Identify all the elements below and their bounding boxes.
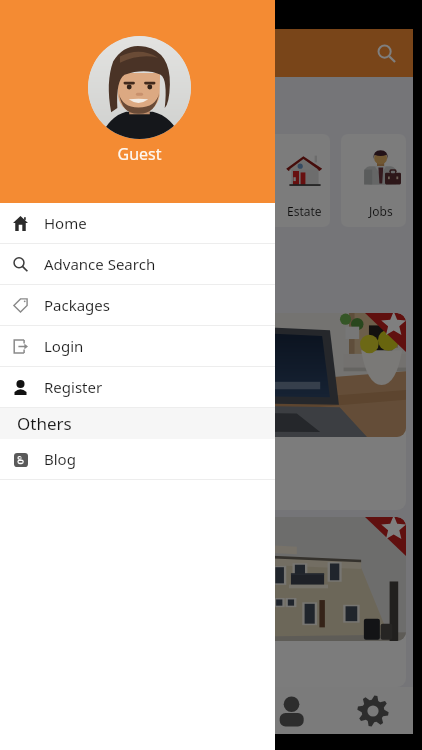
- staticText: Jobs: [369, 203, 393, 219]
- staticText: Guest: [117, 143, 162, 165]
- staticText: Login: [44, 336, 84, 356]
- staticText: Packages: [44, 295, 110, 315]
- button[interactable]: Jobs: [341, 134, 406, 227]
- button[interactable]: Settings: [332, 687, 413, 734]
- button[interactable]: Estate: [265, 134, 330, 227]
- button[interactable]: 4 Bedroom Duplex for Sale: [16, 517, 406, 687]
- button[interactable]: Advance Search: [0, 244, 275, 285]
- staticText: ClassifiedApp: [23, 40, 146, 66]
- staticText: Estate: [287, 203, 322, 219]
- button[interactable]: Packages: [0, 285, 275, 326]
- staticText: Others: [17, 412, 72, 435]
- button[interactable]: Apple Macbook Pro Laptop: [16, 313, 406, 510]
- staticText: Register: [44, 377, 103, 397]
- button[interactable]: Account: [251, 687, 332, 734]
- button[interactable]: Phones: [189, 134, 254, 227]
- button[interactable]: Register: [0, 367, 275, 408]
- staticText: Home: [44, 213, 87, 233]
- staticText: Blog: [44, 449, 76, 469]
- staticText: Featured Ads: [23, 273, 135, 296]
- staticText: Advance Search: [44, 254, 156, 274]
- button[interactable]: Login: [0, 326, 275, 367]
- button[interactable]: Blog: [0, 439, 275, 480]
- button[interactable]: Cars: [113, 134, 178, 227]
- staticText: Apple Macbook Pro Laptop: [27, 443, 241, 465]
- staticText: Lekki, Lagos, Nigeria: [27, 471, 134, 486]
- button[interactable]: Home: [0, 203, 275, 244]
- button[interactable]: Search: [368, 35, 404, 71]
